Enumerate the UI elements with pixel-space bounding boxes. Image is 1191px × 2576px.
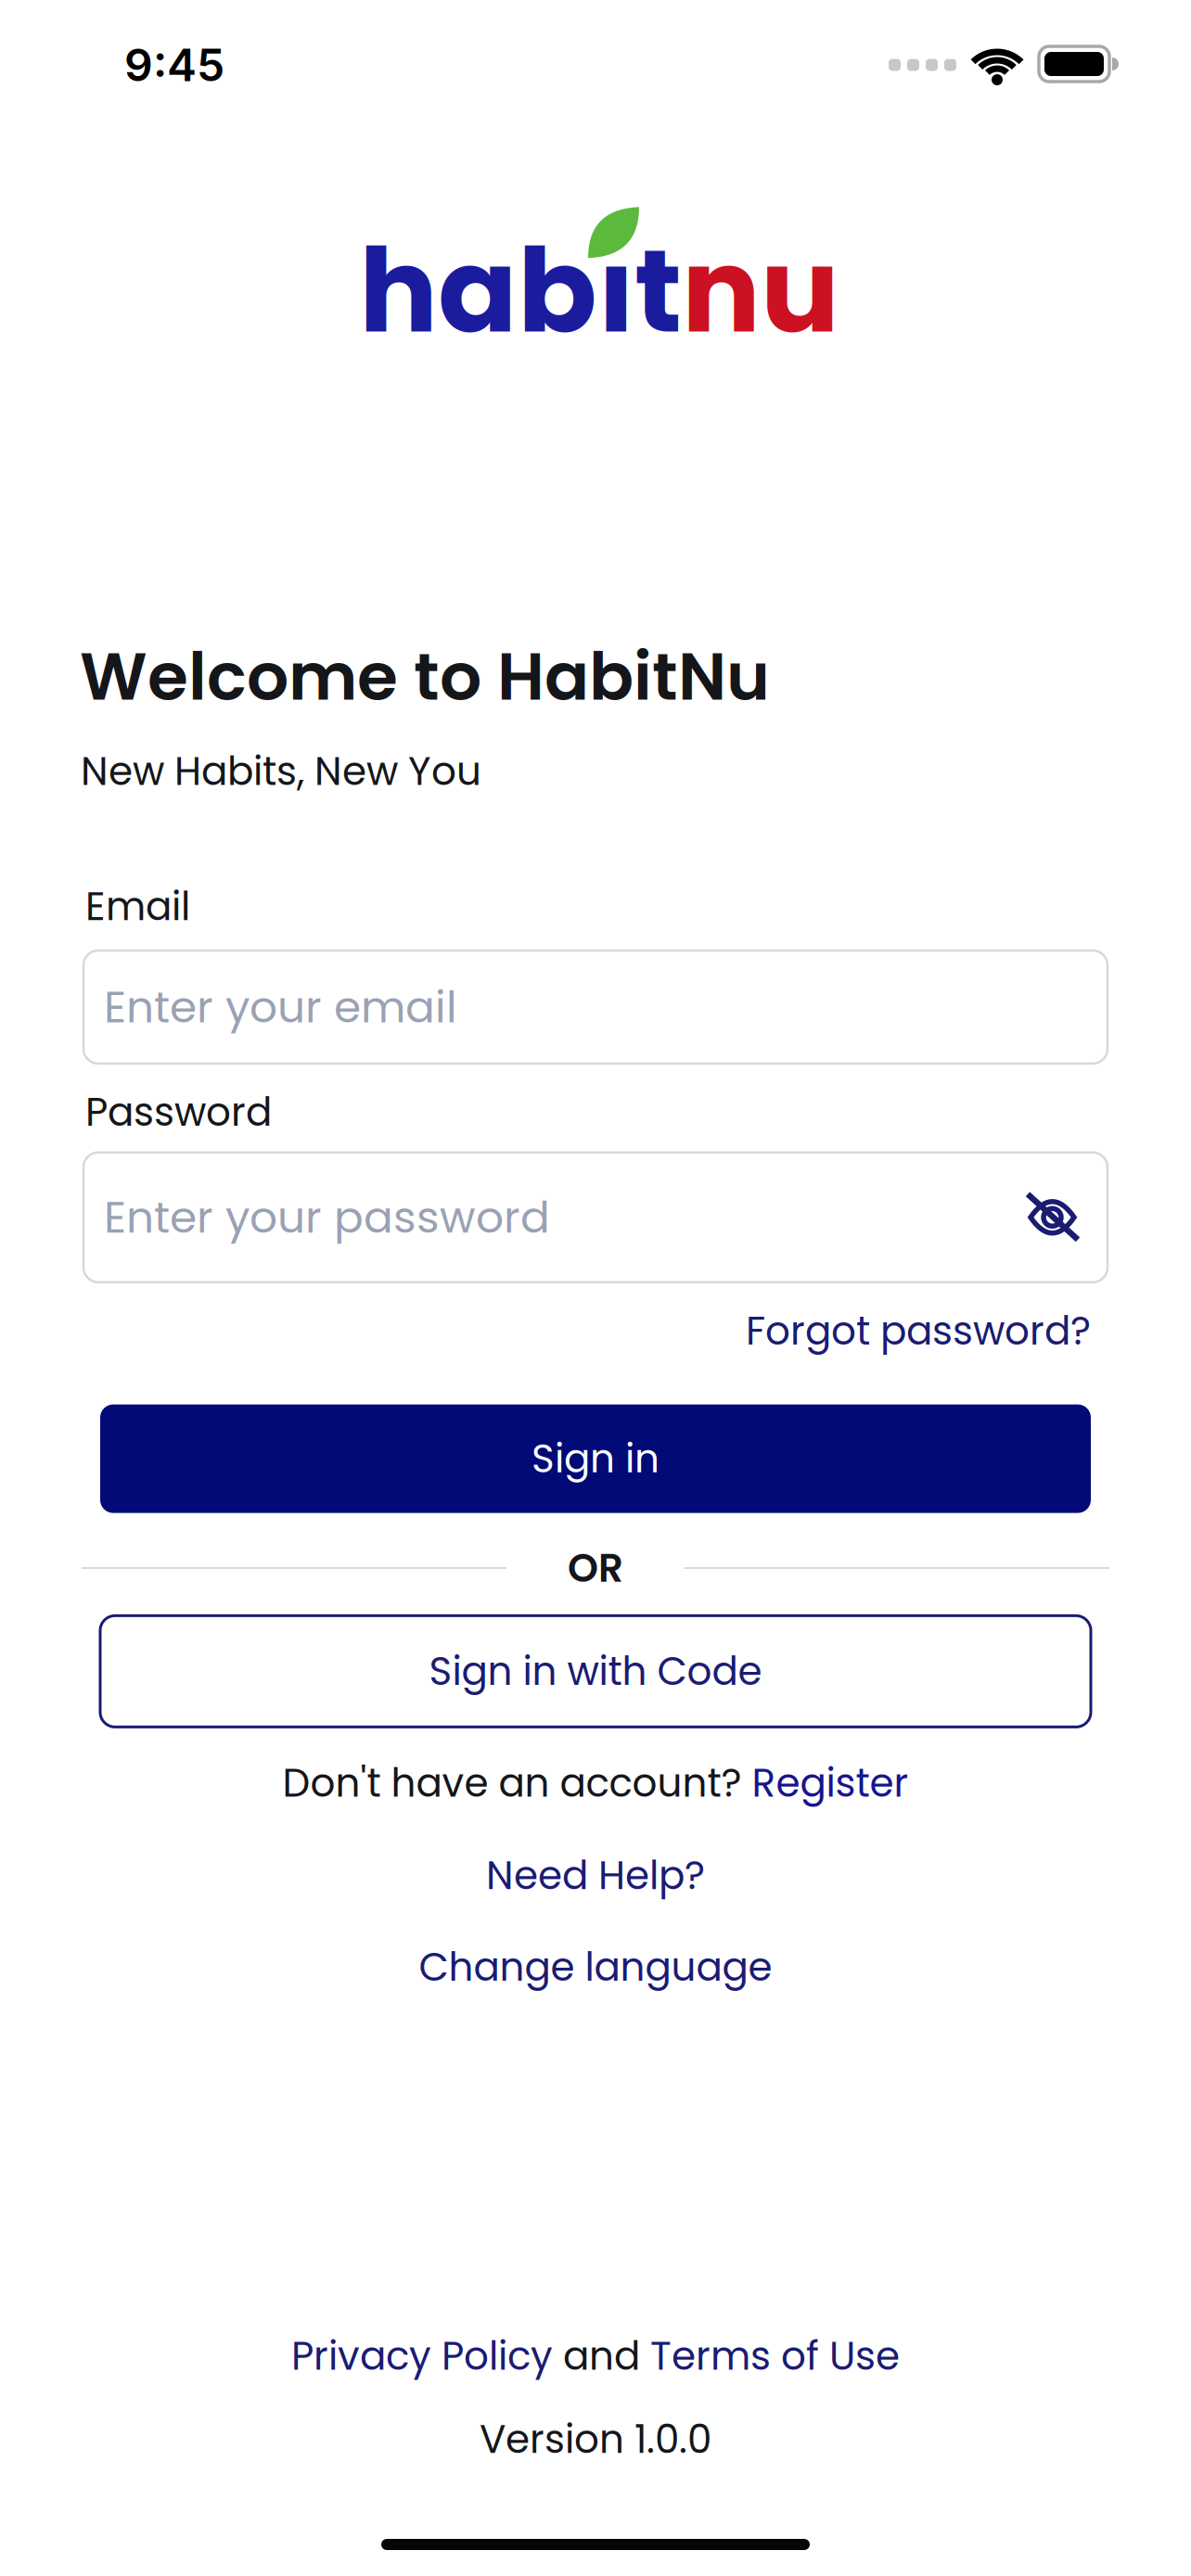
staticText: Need Help?	[486, 1848, 705, 1903]
staticText: Email	[85, 879, 190, 934]
staticText: habıt	[359, 209, 682, 372]
button[interactable]: Change language	[419, 1940, 772, 1994]
staticText: and	[553, 2329, 650, 2383]
staticText: Enter your email	[104, 977, 457, 1038]
staticText: 9:45	[124, 38, 224, 92]
button[interactable]: Need Help?	[486, 1848, 705, 1903]
staticText: New Habits, New You	[81, 744, 481, 799]
staticText: Welcome to HabitNu	[80, 631, 770, 723]
staticText: Register	[752, 1756, 909, 1810]
staticText: Change language	[419, 1940, 772, 1994]
staticText: Sign in with Code	[429, 1644, 762, 1699]
staticText: Forgot password?	[746, 1304, 1091, 1358]
button[interactable]: Terms of Use	[650, 2329, 900, 2383]
staticText: Password	[85, 1085, 272, 1139]
button[interactable]: Privacy Policy	[291, 2329, 553, 2383]
staticText: Sign in	[531, 1431, 660, 1486]
button[interactable]: Register	[752, 1756, 909, 1810]
staticText: nu	[682, 209, 839, 372]
button[interactable]: Forgot password?	[746, 1304, 1091, 1358]
staticText: Enter your password	[104, 1187, 550, 1248]
staticText: Version 1.0.0	[480, 2412, 711, 2467]
button[interactable]: Sign in	[100, 1404, 1091, 1513]
staticText: Privacy Policy	[291, 2329, 553, 2383]
button[interactable]: Show password	[1028, 1196, 1108, 1239]
staticText: Don't have an account?	[282, 1756, 752, 1810]
staticText: OR	[568, 1541, 623, 1595]
button[interactable]: Sign in with Code	[100, 1616, 1091, 1727]
staticText: Terms of Use	[650, 2329, 900, 2383]
